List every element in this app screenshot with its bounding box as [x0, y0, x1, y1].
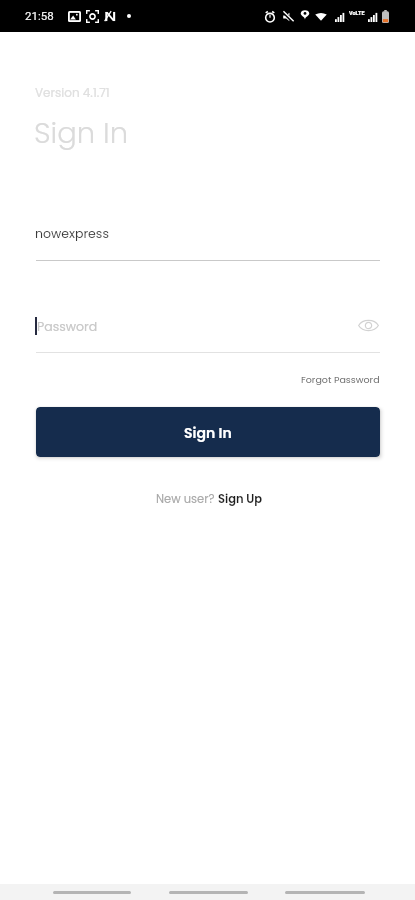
button[interactable]: Password	[36, 310, 380, 352]
button[interactable]: Recents	[46, 884, 138, 900]
staticText: VoLTE	[349, 10, 365, 16]
staticText: nowexpress	[35, 225, 109, 242]
staticText: Version 4.1.71	[35, 84, 110, 101]
button[interactable]: nowexpress	[36, 218, 380, 260]
button[interactable]: Home	[162, 884, 255, 900]
staticText: Sign In	[34, 113, 129, 154]
button[interactable]: Forgot Password	[296, 370, 380, 388]
button[interactable]: Back	[278, 884, 372, 900]
staticText: Sign In	[184, 423, 232, 443]
button[interactable]: Sign Up	[218, 491, 263, 507]
button[interactable]: Sign In	[36, 407, 380, 457]
staticText: 21:58	[25, 9, 54, 22]
staticText: Password	[37, 318, 98, 335]
button[interactable]: Show password	[353, 312, 383, 338]
staticText: Forgot Password	[301, 373, 380, 386]
staticText: New user?	[156, 491, 218, 507]
